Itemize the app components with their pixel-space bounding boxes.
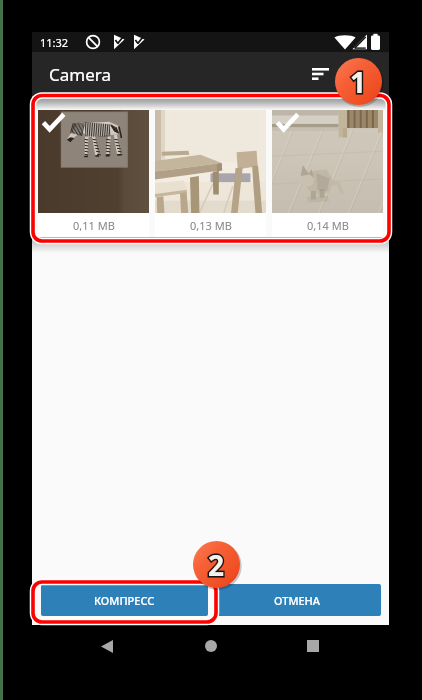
staticText: КОМПРЕСС [94, 593, 155, 608]
staticText: 1 [350, 63, 367, 101]
staticText: 2 [208, 546, 225, 584]
button[interactable]: 0,13 MB [155, 110, 266, 237]
staticText: 1 [350, 63, 367, 101]
staticText: 11:32 [40, 35, 69, 50]
staticText: 2 [208, 546, 225, 584]
staticText: 0,14 MB [307, 218, 349, 233]
staticText: 0,13 MB [190, 218, 232, 233]
button[interactable]: Recent apps [292, 625, 334, 667]
button[interactable]: ОТМЕНА [214, 584, 381, 616]
button[interactable]: 0,14 MB [272, 110, 383, 237]
button[interactable]: КОМПРЕСС [41, 584, 208, 616]
staticText: 0,11 MB [73, 218, 115, 233]
button[interactable]: 0,11 MB [38, 110, 149, 237]
button[interactable]: Sort [300, 54, 340, 94]
button[interactable]: Back [86, 625, 128, 667]
staticText: ОТМЕНА [274, 593, 321, 608]
button[interactable]: Home [190, 625, 232, 667]
staticText: Camera [49, 63, 111, 86]
